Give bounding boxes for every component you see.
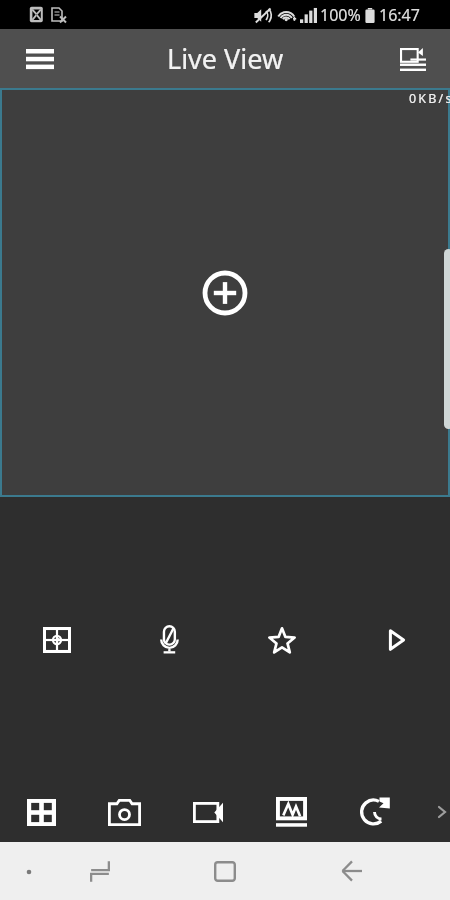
staticText: 16:47	[379, 4, 420, 26]
button[interactable]: Camera list	[392, 37, 436, 81]
button[interactable]: Snapshot	[0, 618, 112, 662]
button[interactable]: Favorite	[224, 618, 337, 662]
button[interactable]: Record video	[166, 790, 249, 834]
button[interactable]: More tools	[415, 790, 450, 834]
button[interactable]: Play	[337, 618, 450, 662]
button[interactable]: Grid layout	[0, 790, 83, 834]
staticText: 0KB/s	[409, 90, 450, 107]
button[interactable]: Add camera	[198, 266, 252, 320]
button[interactable]: Take photo	[83, 790, 166, 834]
button[interactable]: Keyboard	[12, 854, 46, 888]
button[interactable]: Rotate	[332, 790, 415, 834]
button[interactable]: Menu	[16, 35, 64, 83]
button[interactable]: Recent apps	[203, 849, 247, 893]
button[interactable]: Split screen	[78, 849, 122, 893]
staticText: Live View	[167, 40, 284, 77]
staticText: 100%	[320, 4, 361, 26]
button[interactable]: Microphone	[112, 618, 224, 662]
button[interactable]: Gallery	[249, 790, 332, 834]
button[interactable]: Back	[330, 849, 374, 893]
